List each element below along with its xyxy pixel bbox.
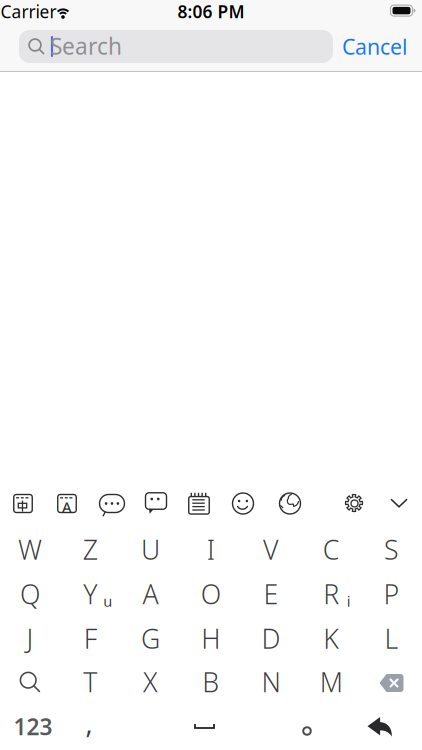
staticText: T [83, 664, 97, 700]
staticText: G [141, 621, 160, 656]
button[interactable]: V [242, 528, 300, 570]
button[interactable]: Chinese input [2, 486, 44, 520]
staticText: P [383, 576, 399, 612]
button[interactable]: Y [61, 573, 119, 615]
button[interactable]: Phrases [91, 486, 133, 520]
staticText: 8:06 PM [177, 0, 244, 23]
staticText: C [323, 532, 340, 567]
staticText: i [347, 591, 351, 611]
staticText: A [142, 576, 158, 612]
button[interactable]: Emoji [222, 486, 264, 520]
staticText: Carrier [0, 0, 56, 23]
button[interactable]: Quick phrases [135, 486, 177, 520]
button[interactable]: P [362, 573, 420, 615]
staticText: B [202, 664, 219, 700]
button[interactable]: Q [1, 573, 59, 615]
button[interactable]: , [64, 702, 114, 744]
button[interactable]: O [182, 573, 240, 615]
button[interactable]: Switch keyboard [269, 486, 311, 520]
button[interactable]: Z [61, 528, 119, 570]
button[interactable]: Dismiss keyboard [378, 486, 420, 520]
button[interactable]: S [362, 528, 420, 570]
button[interactable]: U [121, 528, 179, 570]
staticText: L [384, 621, 398, 656]
button[interactable]: C [302, 528, 360, 570]
staticText: V [263, 532, 279, 567]
staticText: R [323, 576, 339, 612]
button[interactable]: R [302, 573, 360, 615]
staticText: Q [20, 576, 40, 612]
staticText: K [323, 621, 339, 656]
button[interactable]: W [1, 528, 59, 570]
staticText: M [320, 664, 343, 700]
button[interactable]: Return [351, 706, 409, 748]
button[interactable]: A [121, 573, 179, 615]
staticText: J [26, 621, 33, 656]
staticText: Y [83, 576, 97, 612]
staticText: W [18, 532, 42, 567]
staticText: H [201, 621, 220, 656]
button[interactable]: Space [129, 705, 279, 747]
button[interactable]: Search [1, 661, 59, 703]
staticText: Search [50, 31, 122, 61]
staticText: N [261, 664, 280, 700]
button[interactable]: Settings [333, 486, 375, 520]
button[interactable]: F [61, 617, 119, 659]
staticText: u [103, 591, 112, 611]
staticText: X [143, 664, 158, 700]
button[interactable]: J [1, 617, 59, 659]
staticText: I [207, 532, 215, 567]
button[interactable]: Clipboard [178, 486, 220, 520]
staticText: O [201, 576, 221, 612]
button[interactable]: N [242, 661, 300, 703]
button[interactable]: T [61, 661, 119, 703]
button[interactable]: English input [46, 486, 88, 520]
button[interactable]: Delete [362, 662, 420, 704]
button[interactable]: X [121, 661, 179, 703]
button[interactable]: E [242, 573, 300, 615]
button[interactable]: D [242, 617, 300, 659]
button[interactable]: Cancel [330, 30, 420, 63]
staticText: D [261, 621, 280, 656]
button[interactable]: G [121, 617, 179, 659]
button[interactable]: Period [282, 710, 332, 750]
staticText: A [62, 497, 72, 517]
staticText: U [141, 532, 160, 567]
staticText: Z [83, 532, 98, 567]
button[interactable]: 123 [2, 705, 64, 747]
staticText: F [84, 621, 97, 656]
button[interactable]: L [362, 617, 420, 659]
staticText: , [85, 705, 92, 741]
staticText: S [384, 532, 399, 567]
button[interactable]: I [182, 528, 240, 570]
button[interactable]: H [182, 617, 240, 659]
button[interactable]: K [302, 617, 360, 659]
button[interactable]: Search [19, 30, 333, 63]
staticText: E [263, 576, 278, 612]
button[interactable]: M [302, 661, 360, 703]
staticText: Cancel [342, 32, 408, 61]
button[interactable]: B [182, 661, 240, 703]
staticText: 123 [13, 711, 52, 741]
